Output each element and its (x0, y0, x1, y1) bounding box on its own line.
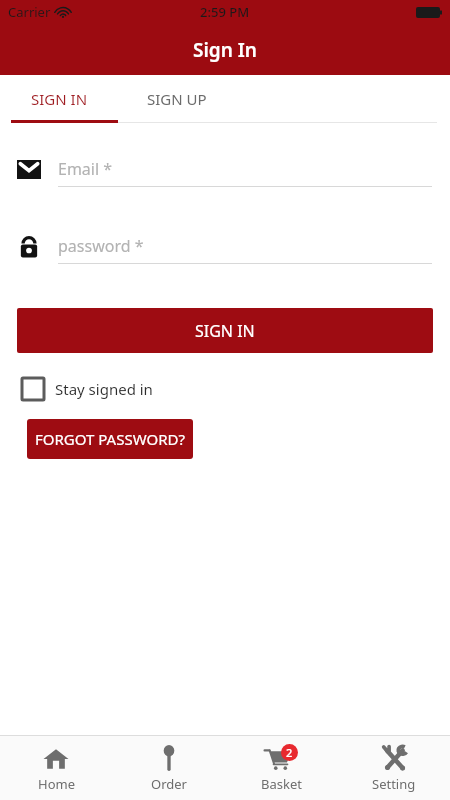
staticText: Stay signed in (55, 379, 153, 399)
staticText: Setting (372, 775, 416, 793)
button[interactable]: Home (0, 736, 112, 800)
button[interactable]: Setting (338, 736, 450, 800)
staticText: SIGN UP (147, 89, 207, 109)
staticText: Order (151, 775, 187, 793)
button[interactable]: FORGOT PASSWORD? (27, 419, 193, 459)
staticText: Sign In (193, 37, 257, 63)
button[interactable]: SIGN UP (118, 75, 236, 123)
staticText: Home (38, 775, 75, 793)
button[interactable]: 2 (225, 736, 337, 800)
button[interactable]: SIGN IN (17, 308, 433, 353)
staticText: SIGN IN (195, 320, 255, 342)
staticText: password * (58, 235, 144, 257)
staticText: 2:59 PM (200, 3, 250, 21)
staticText: Carrier (8, 3, 51, 21)
staticText: 2 (286, 745, 293, 760)
staticText: Email * (58, 158, 113, 180)
button[interactable]: Order (113, 736, 225, 800)
staticText: FORGOT PASSWORD? (35, 429, 185, 449)
button[interactable]: Stay signed in (22, 378, 153, 400)
staticText: Basket (261, 775, 302, 793)
button[interactable]: SIGN IN (0, 75, 118, 123)
staticText: SIGN IN (31, 89, 88, 109)
